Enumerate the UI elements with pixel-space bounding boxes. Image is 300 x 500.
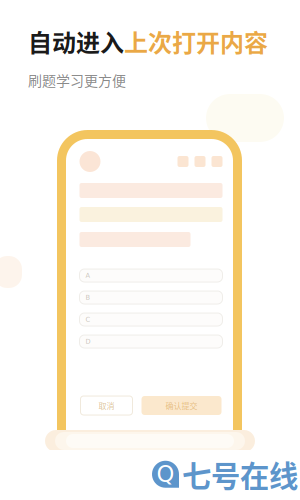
staticText: A: [85, 272, 90, 279]
staticText: 取消: [98, 400, 114, 411]
staticText: B: [85, 294, 90, 301]
staticText: 自动进入: [28, 24, 124, 59]
staticText: 七号在线: [182, 453, 298, 495]
staticText: 上次打开内容: [124, 24, 268, 59]
staticText: C: [85, 316, 90, 323]
staticText: D: [85, 338, 90, 345]
button[interactable]: 取消: [80, 396, 132, 415]
staticText: Q: [156, 461, 174, 487]
staticText: 确认提交: [165, 400, 197, 411]
button[interactable]: 确认提交: [141, 396, 221, 415]
staticText: 刷题学习更方便: [28, 70, 126, 90]
